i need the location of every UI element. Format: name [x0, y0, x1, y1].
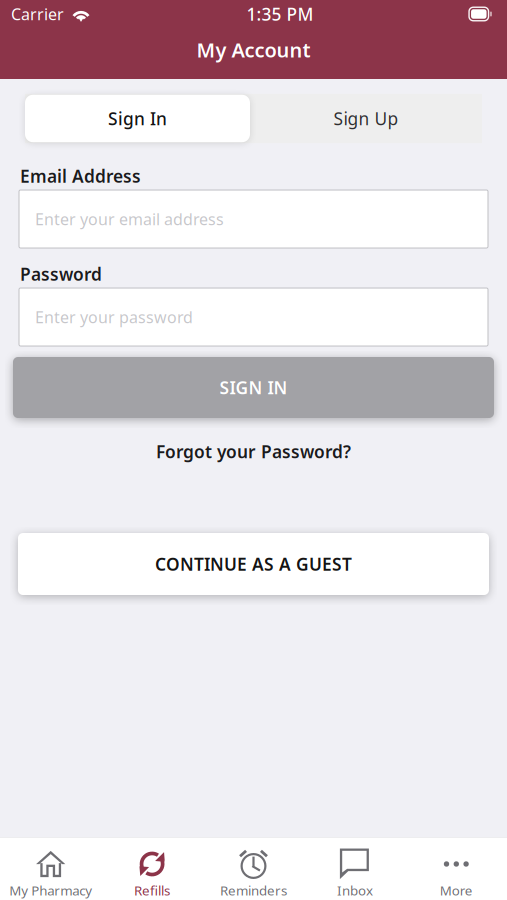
staticText: Enter your email address	[35, 208, 224, 230]
button[interactable]: Inbox	[304, 837, 406, 900]
staticText: 1:35 PM	[246, 2, 313, 25]
staticText: My Account	[196, 36, 310, 63]
button[interactable]: Sign In	[25, 95, 250, 142]
button[interactable]: Refills	[101, 837, 203, 900]
staticText: Email Address	[20, 164, 141, 187]
staticText: SIGN IN	[219, 376, 287, 399]
staticText: Carrier	[11, 3, 64, 25]
staticText: Enter your password	[35, 306, 193, 328]
staticText: CONTINUE AS A GUEST	[155, 552, 352, 575]
button[interactable]: Forgot your Password?	[156, 436, 351, 467]
button[interactable]: SIGN IN	[13, 357, 494, 418]
staticText: More	[440, 881, 473, 899]
button[interactable]: Enter your email address	[19, 190, 488, 248]
staticText: Sign In	[108, 107, 167, 130]
button[interactable]: CONTINUE AS A GUEST	[18, 533, 489, 595]
button[interactable]: My Pharmacy	[0, 837, 101, 900]
button[interactable]: Reminders	[203, 837, 304, 900]
button[interactable]: Enter your password	[19, 288, 488, 346]
staticText: Forgot your Password?	[156, 440, 351, 463]
staticText: Refills	[134, 881, 170, 899]
button[interactable]: Sign Up	[250, 94, 482, 143]
staticText: Sign Up	[333, 107, 398, 130]
staticText: My Pharmacy	[9, 881, 92, 899]
staticText: Password	[20, 262, 102, 285]
button[interactable]: More	[406, 837, 507, 900]
staticText: Inbox	[337, 881, 373, 899]
staticText: Reminders	[220, 881, 287, 899]
